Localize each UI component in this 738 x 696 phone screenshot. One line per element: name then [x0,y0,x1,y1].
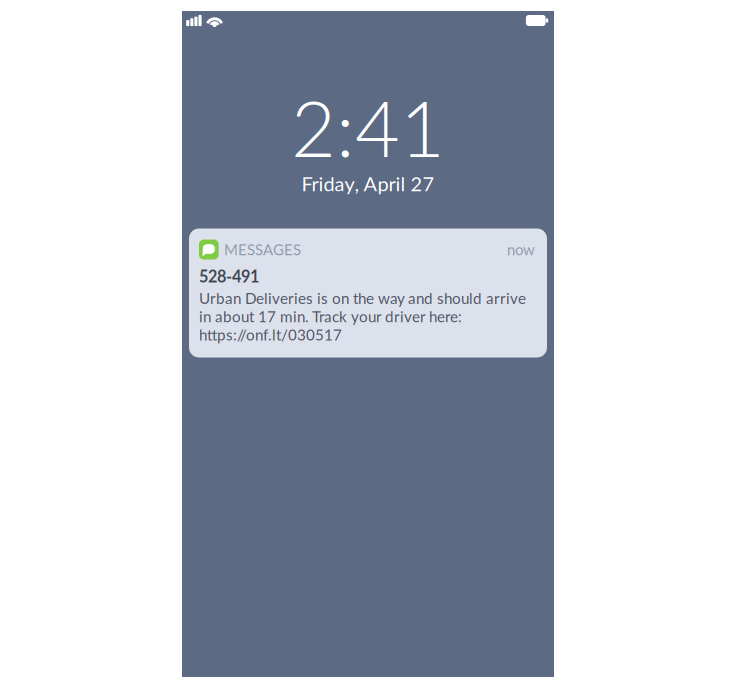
staticText: Urban Deliveries is on the way and shoul… [199,289,526,344]
staticText: 528-491 [199,266,259,286]
staticText: 2:41 [291,81,445,173]
staticText: Friday, April 27 [301,171,434,195]
button[interactable]: MESSAGES [189,228,547,357]
staticText: now [507,240,535,258]
staticText: MESSAGES [224,240,301,258]
